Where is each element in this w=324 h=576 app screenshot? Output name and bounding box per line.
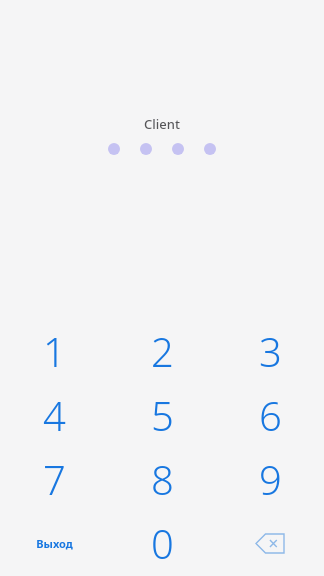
staticText: 1 (43, 324, 66, 378)
staticText: 7 (43, 452, 66, 506)
staticText: 3 (259, 324, 282, 378)
button[interactable]: 8 (108, 447, 216, 511)
staticText: Client (144, 115, 180, 133)
button[interactable]: 9 (216, 447, 324, 511)
staticText: 5 (151, 388, 174, 442)
staticText: 6 (259, 388, 282, 442)
button[interactable]: 7 (0, 447, 108, 511)
button[interactable]: 3 (216, 319, 324, 383)
staticText: 9 (259, 452, 282, 506)
staticText: 2 (151, 324, 174, 378)
button[interactable]: Выход (0, 511, 108, 575)
staticText: Выход (36, 536, 73, 551)
button[interactable]: 2 (108, 319, 216, 383)
button[interactable]: 5 (108, 383, 216, 447)
staticText: 0 (151, 516, 174, 570)
button[interactable]: Backspace (216, 511, 324, 575)
staticText: 8 (151, 452, 174, 506)
button[interactable]: 0 (108, 511, 216, 575)
staticText: 4 (43, 388, 66, 442)
button[interactable]: 6 (216, 383, 324, 447)
button[interactable]: 1 (0, 319, 108, 383)
button[interactable]: 4 (0, 383, 108, 447)
